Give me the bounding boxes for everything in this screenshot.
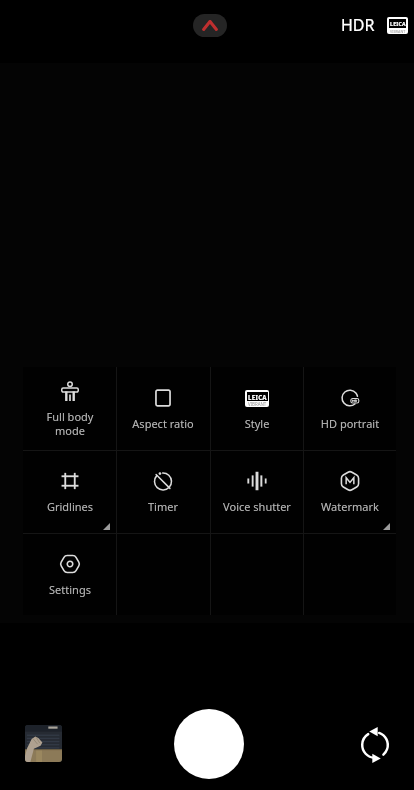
staticText: VIBRANT	[390, 29, 406, 34]
button[interactable]: Watermark	[303, 450, 396, 533]
staticText: Watermark	[315, 499, 385, 514]
button[interactable]: Shutter	[174, 709, 244, 779]
button[interactable]: HDR	[335, 11, 381, 39]
button[interactable]: More camera options	[193, 14, 227, 37]
button[interactable]: Leica Vibrant style	[387, 17, 408, 34]
staticText: HDR	[341, 14, 375, 36]
staticText: Aspect ratio	[128, 416, 198, 431]
staticText: Voice shutter	[222, 499, 292, 514]
button[interactable]: HD portrait	[303, 367, 396, 450]
button[interactable]: Aspect ratio	[116, 367, 209, 450]
staticText: Settings	[35, 582, 105, 597]
button[interactable]: Gallery	[25, 725, 62, 762]
staticText: Timer	[128, 499, 198, 514]
button[interactable]: Switch camera	[353, 723, 397, 767]
button[interactable]: Full body mode	[23, 367, 116, 450]
staticText: Full body mode	[35, 409, 105, 438]
staticText: Style	[222, 416, 292, 431]
staticText: HD portrait	[315, 416, 385, 431]
button[interactable]: Gridlines	[23, 450, 116, 533]
button[interactable]: Settings	[23, 533, 116, 616]
staticText: Gridlines	[35, 499, 105, 514]
staticText: LEICA	[390, 20, 406, 27]
button[interactable]: LEICA	[210, 367, 303, 450]
staticText: LEICA	[248, 393, 267, 401]
button[interactable]: Voice shutter	[210, 450, 303, 533]
button[interactable]: Timer	[116, 450, 209, 533]
staticText: VIBRANT	[248, 401, 267, 407]
